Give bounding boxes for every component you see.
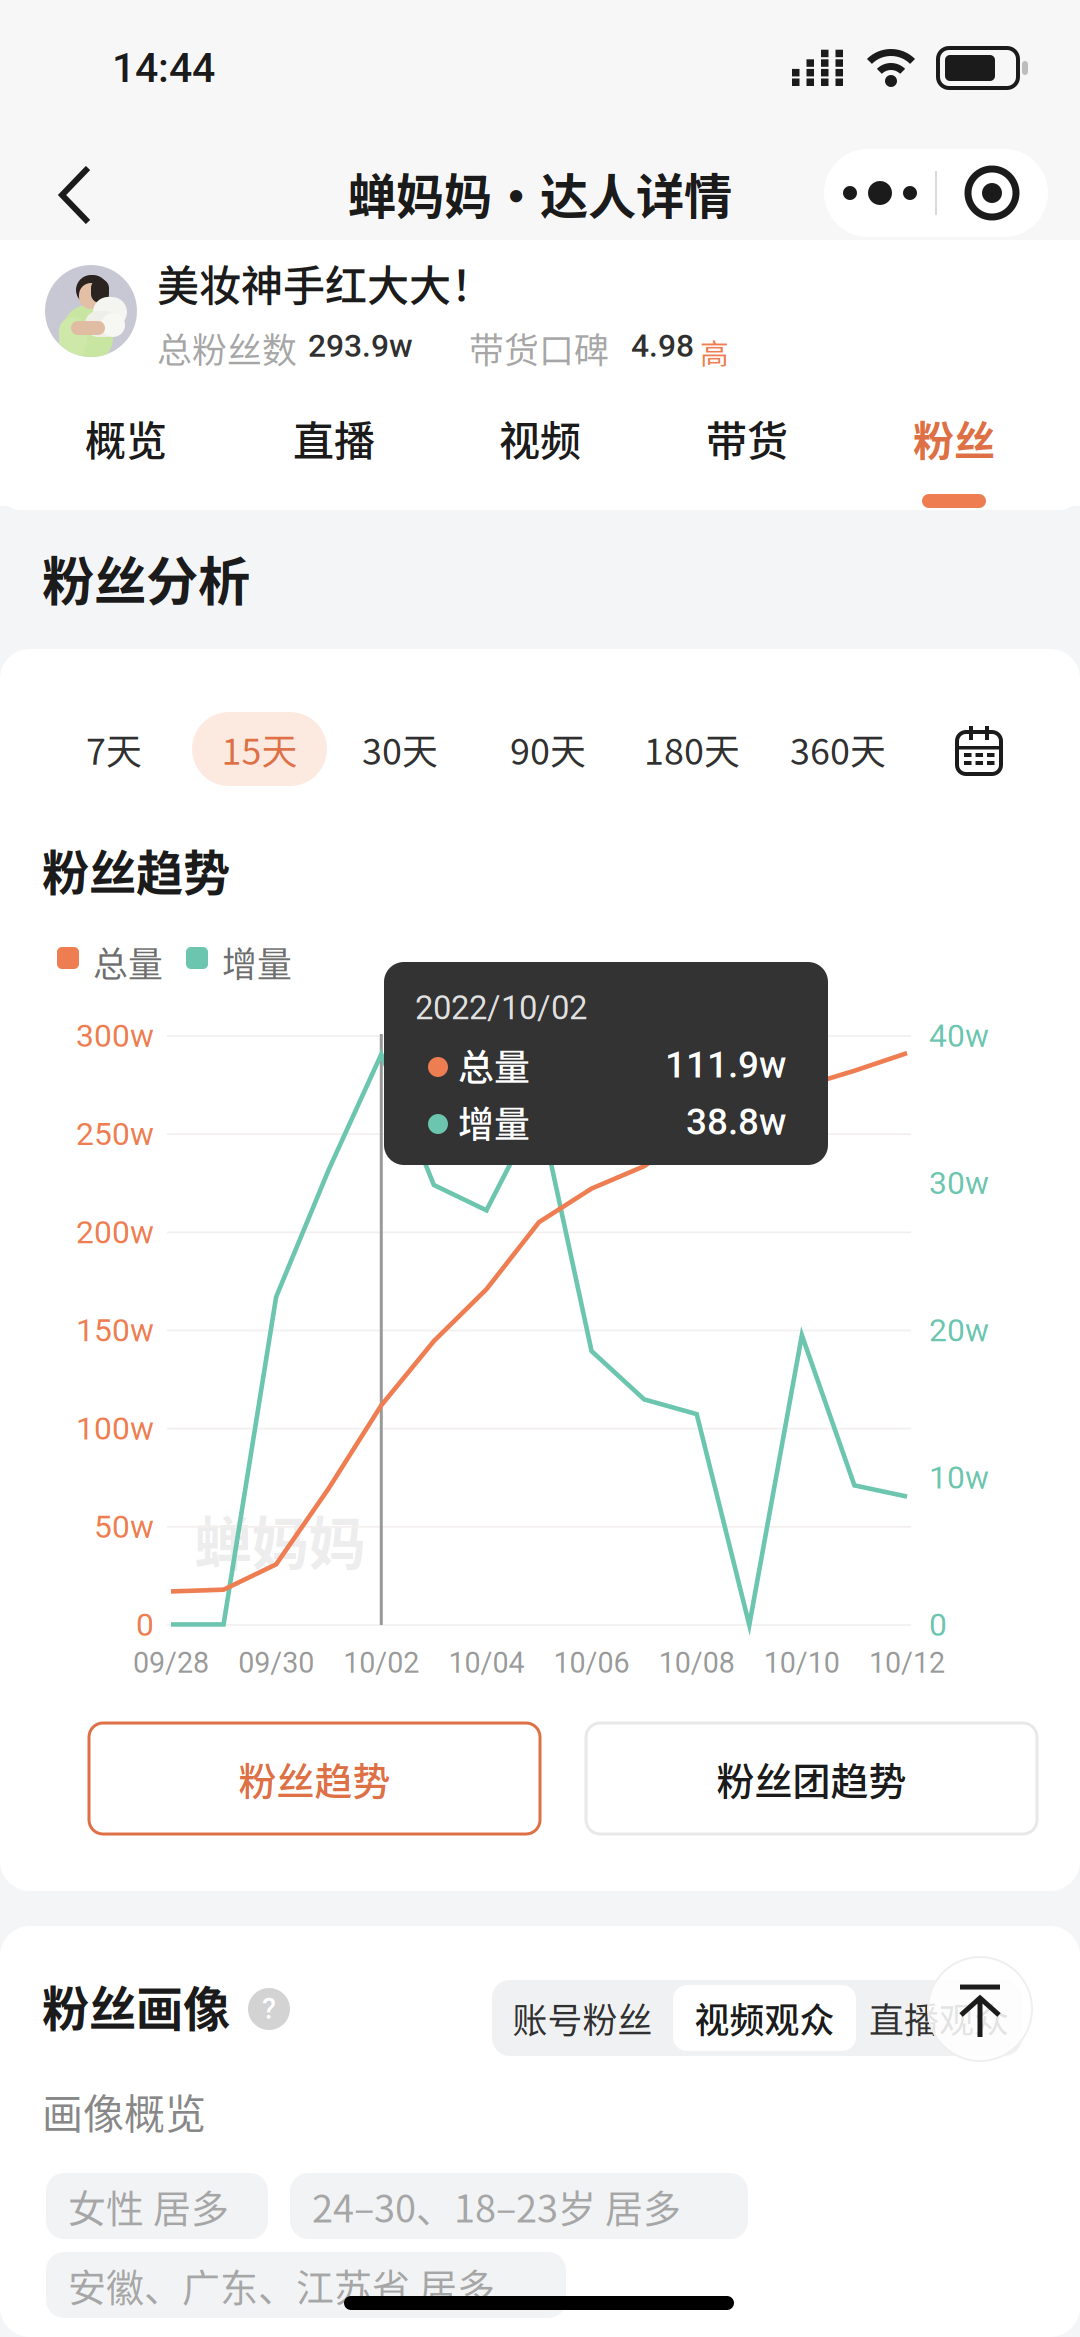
- staticText: 90天: [510, 723, 586, 775]
- button[interactable]: 带货: [694, 402, 800, 474]
- staticText: 250w: [76, 1115, 154, 1153]
- staticText: 画像概览: [42, 2081, 206, 2141]
- staticText: 安徽、广东、江苏省 居多: [68, 2257, 495, 2312]
- staticText: 111.9w: [665, 1043, 786, 1087]
- staticText: 粉丝趋势: [42, 836, 230, 904]
- button[interactable]: Pick date range: [957, 726, 1001, 774]
- staticText: 0: [929, 1606, 947, 1644]
- staticText: 视频: [499, 408, 581, 468]
- staticText: 总量: [458, 1039, 530, 1091]
- staticText: 7天: [86, 723, 142, 775]
- staticText: 50w: [94, 1508, 154, 1545]
- staticText: 粉丝团趋势: [716, 1751, 906, 1806]
- button[interactable]: 概览: [73, 402, 179, 474]
- button[interactable]: 账号粉丝: [492, 1980, 673, 2056]
- staticText: 概览: [85, 408, 167, 468]
- staticText: 女性 居多: [68, 2178, 229, 2233]
- staticText: 增量: [458, 1096, 530, 1148]
- staticText: 直播观众: [869, 1993, 1009, 2043]
- staticText: 40w: [929, 1017, 989, 1055]
- button[interactable]: More: [824, 149, 936, 237]
- button[interactable]: 粉丝团趋势: [586, 1723, 1037, 1834]
- button[interactable]: 15天: [192, 712, 327, 786]
- staticText: 总粉丝数: [157, 323, 297, 373]
- staticText: 24–30、18–23岁 居多: [312, 2178, 681, 2233]
- staticText: 180天: [644, 723, 740, 775]
- staticText: 增量: [222, 937, 292, 987]
- button[interactable]: Back to top: [928, 1957, 1032, 2061]
- button[interactable]: Help: [248, 1988, 290, 2030]
- button[interactable]: 视频: [487, 402, 593, 474]
- button[interactable]: 360天: [758, 712, 918, 786]
- staticText: 100w: [76, 1410, 154, 1447]
- button[interactable]: 7天: [64, 712, 164, 786]
- staticText: 粉丝趋势: [238, 1751, 390, 1806]
- staticText: 10/08: [659, 1646, 735, 1680]
- button[interactable]: 直播观众: [856, 1980, 1022, 2056]
- button[interactable]: 粉丝趋势: [89, 1723, 540, 1834]
- button[interactable]: 30天: [339, 712, 461, 786]
- staticText: 10/10: [764, 1646, 840, 1680]
- staticText: 蝉妈妈·达人详情: [348, 158, 732, 228]
- staticText: 0: [136, 1606, 154, 1644]
- staticText: 带货: [706, 408, 788, 468]
- staticText: 10/04: [448, 1646, 524, 1680]
- staticText: 30天: [362, 723, 438, 775]
- staticText: 15天: [221, 723, 297, 775]
- staticText: 300w: [76, 1017, 154, 1055]
- staticText: 总量: [93, 937, 163, 987]
- staticText: ?: [262, 1992, 276, 2026]
- staticText: 09/30: [238, 1646, 314, 1680]
- staticText: 200w: [76, 1214, 154, 1251]
- staticText: 360天: [790, 723, 886, 775]
- button[interactable]: 180天: [612, 712, 772, 786]
- staticText: 150w: [76, 1312, 154, 1349]
- button[interactable]: 视频观众: [673, 1980, 856, 2056]
- button[interactable]: 直播: [281, 402, 387, 474]
- staticText: 账号粉丝: [512, 1993, 652, 2043]
- staticText: 直播: [293, 408, 375, 468]
- staticText: 粉丝: [913, 408, 995, 468]
- button[interactable]: 粉丝: [901, 402, 1007, 474]
- staticText: 10/02: [343, 1646, 419, 1680]
- button[interactable]: Back: [20, 140, 130, 250]
- staticText: 4.98: [631, 327, 694, 365]
- staticText: 38.8w: [686, 1100, 786, 1144]
- button[interactable]: Close: [936, 149, 1048, 237]
- staticText: 293.9w: [308, 327, 413, 365]
- staticText: 带货口碑: [469, 323, 609, 373]
- staticText: 10w: [929, 1459, 989, 1496]
- staticText: 高: [700, 331, 729, 373]
- staticText: 14:44: [112, 44, 215, 92]
- staticText: 10/12: [869, 1646, 945, 1680]
- staticText: 20w: [929, 1312, 989, 1349]
- staticText: 09/28: [133, 1646, 209, 1680]
- staticText: 粉丝分析: [42, 540, 250, 616]
- staticText: 视频观众: [694, 1993, 834, 2043]
- staticText: 30w: [929, 1165, 989, 1202]
- staticText: 蝉妈妈: [194, 1498, 365, 1582]
- staticText: 粉丝画像: [42, 1972, 230, 2040]
- staticText: 10/06: [554, 1646, 630, 1680]
- button[interactable]: 90天: [487, 712, 609, 786]
- staticText: 美妆神手红大大！: [157, 253, 493, 313]
- staticText: 2022/10/02: [415, 989, 587, 1027]
